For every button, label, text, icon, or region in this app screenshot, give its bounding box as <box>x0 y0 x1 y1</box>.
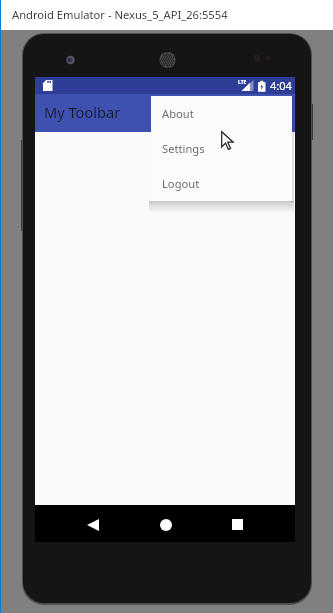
staticText: My Toolbar <box>44 102 121 122</box>
button[interactable]: Home <box>147 506 184 543</box>
button[interactable]: Back <box>74 506 111 543</box>
button[interactable]: Recent apps <box>219 506 256 543</box>
button[interactable]: My Toolbar <box>35 94 295 132</box>
staticText: LTE <box>238 79 247 86</box>
staticText: Settings <box>162 141 205 156</box>
button[interactable]: Logout <box>151 166 292 201</box>
staticText: 4:04 <box>270 78 292 93</box>
staticText: Logout <box>162 176 200 191</box>
button[interactable]: About <box>151 96 292 131</box>
staticText: About <box>162 106 194 121</box>
staticText: Android Emulator - Nexus_5_API_26:5554 <box>12 7 228 22</box>
button[interactable]: Settings <box>151 131 292 166</box>
